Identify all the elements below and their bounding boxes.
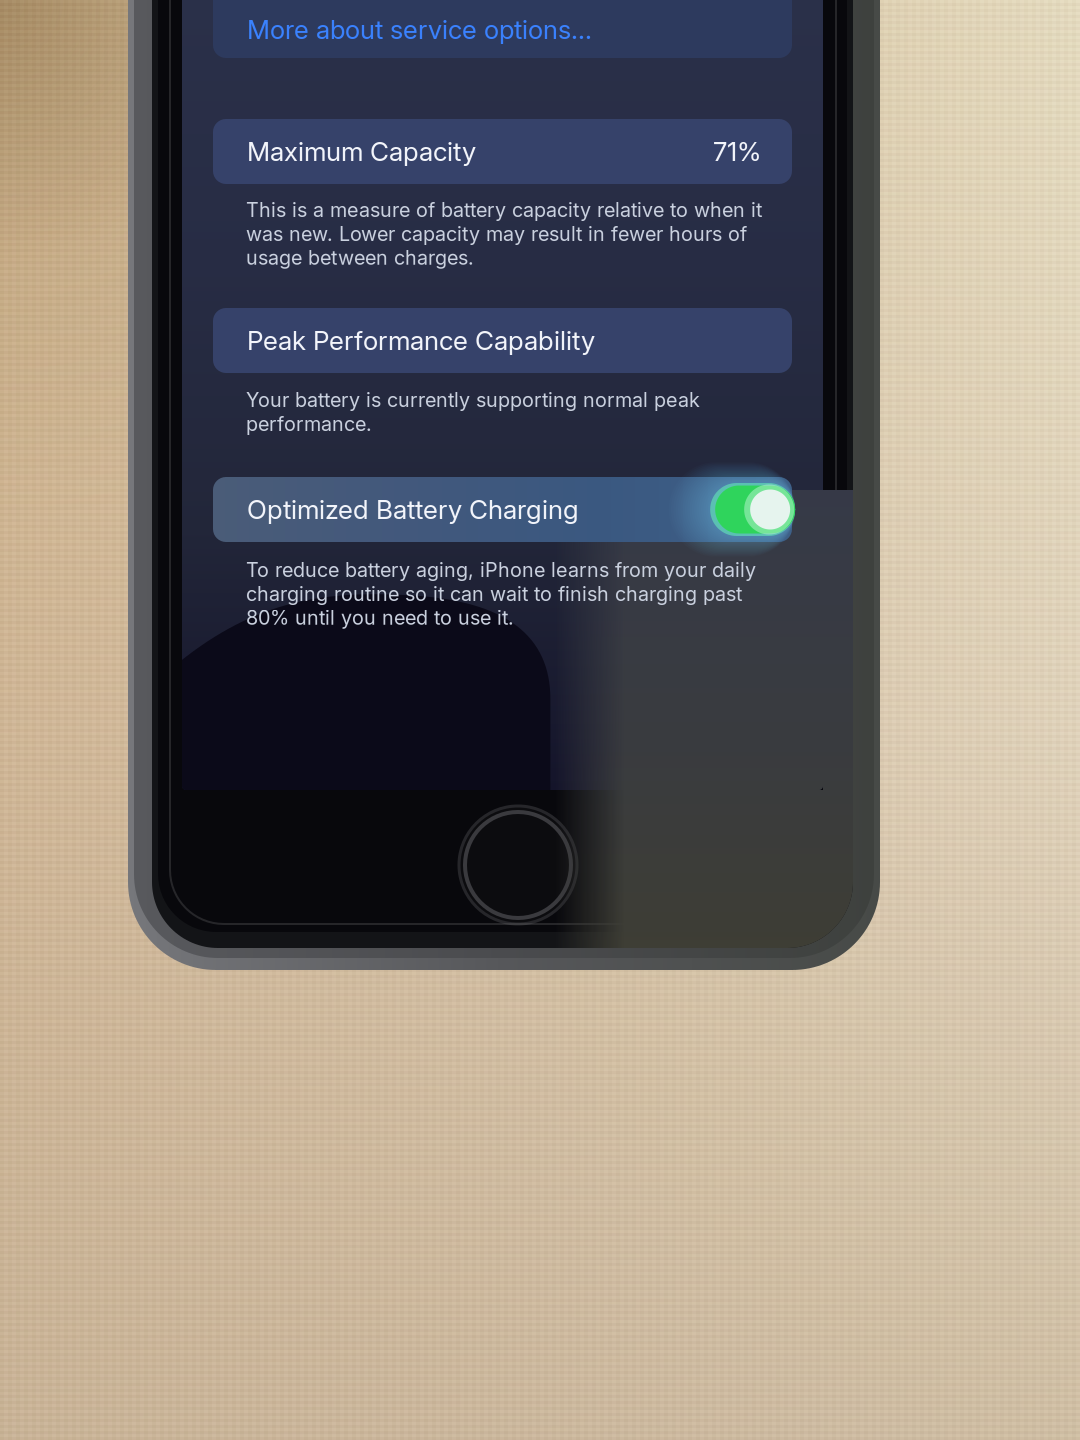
- button[interactable]: Optimized Battery Charging: [213, 477, 792, 542]
- staticText: More about service options...: [247, 14, 592, 45]
- staticText: To reduce battery aging, iPhone learns f…: [246, 558, 756, 630]
- staticText: 71%: [713, 136, 761, 167]
- staticText: Maximum Capacity: [247, 136, 476, 167]
- staticText: Optimized Battery Charging: [247, 494, 579, 525]
- staticText: This is a measure of battery capacity re…: [246, 198, 762, 270]
- button[interactable]: Maximum Capacity: [213, 119, 792, 184]
- staticText: Peak Performance Capability: [247, 325, 595, 356]
- button[interactable]: Peak Performance Capability: [213, 308, 792, 373]
- staticText: Your battery is currently supporting nor…: [246, 388, 700, 436]
- button[interactable]: More about service options...: [213, 0, 792, 58]
